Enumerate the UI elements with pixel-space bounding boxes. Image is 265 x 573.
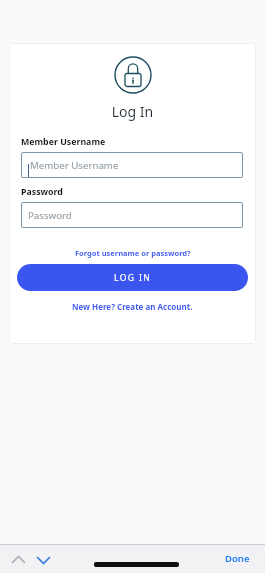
button[interactable]: LOG IN — [17, 264, 248, 291]
staticText: Log In — [9, 102, 256, 121]
staticText: Password — [28, 209, 72, 222]
staticText: Member Username — [21, 136, 106, 148]
staticText: Password — [21, 186, 63, 198]
button[interactable]: Forgot username or password? — [9, 248, 256, 258]
staticText: Forgot username or password? — [75, 248, 191, 258]
staticText: Done — [225, 552, 250, 565]
button[interactable]: Done — [225, 552, 250, 565]
button[interactable]: New Here? Create an Account. — [9, 301, 256, 312]
staticText: LOG IN — [114, 272, 152, 284]
button[interactable]: Password — [21, 202, 243, 228]
button[interactable] — [31, 551, 55, 569]
button[interactable] — [6, 550, 30, 568]
staticText: Member Username — [30, 159, 119, 172]
staticText: New Here? Create an Account. — [72, 301, 193, 312]
button[interactable]: Member Username — [21, 152, 243, 178]
